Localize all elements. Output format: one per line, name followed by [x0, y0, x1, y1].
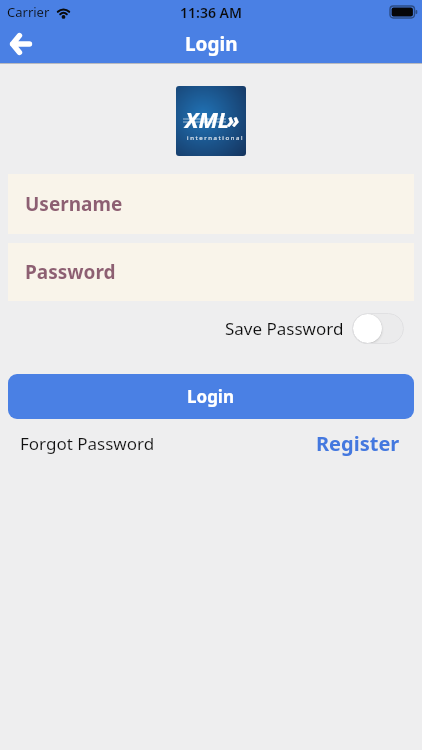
button[interactable]	[352, 313, 404, 344]
button[interactable]: Login	[8, 374, 414, 419]
button[interactable]: Password	[8, 243, 414, 301]
staticText: international	[187, 134, 245, 142]
staticText: Login	[187, 385, 235, 408]
button[interactable]: Register	[316, 430, 400, 457]
staticText: Login	[185, 31, 238, 57]
staticText: 11:36 AM	[180, 3, 242, 22]
button[interactable]	[4, 28, 36, 60]
staticText: Password	[25, 259, 116, 285]
staticText: Save Password	[225, 317, 344, 340]
staticText: Carrier	[7, 3, 50, 21]
button[interactable]: Forgot Password	[20, 432, 155, 455]
staticText: XML	[185, 104, 230, 134]
button[interactable]: Username	[8, 174, 414, 234]
staticText: Username	[25, 191, 123, 217]
staticText: »	[227, 104, 240, 134]
